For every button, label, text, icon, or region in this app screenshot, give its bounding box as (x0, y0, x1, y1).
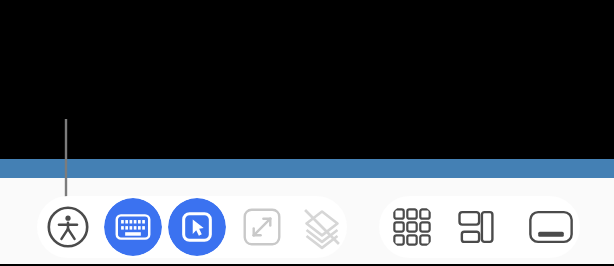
button[interactable]: Dock (524, 203, 578, 251)
button[interactable]: Hide layers (298, 203, 346, 251)
button[interactable]: Split view (452, 203, 502, 251)
button[interactable]: Resize (238, 203, 286, 251)
button[interactable]: All apps (388, 203, 436, 251)
button[interactable]: Onscreen keyboard (104, 198, 162, 256)
button[interactable]: Pointer control (168, 198, 226, 256)
button[interactable]: Accessibility (44, 203, 92, 251)
